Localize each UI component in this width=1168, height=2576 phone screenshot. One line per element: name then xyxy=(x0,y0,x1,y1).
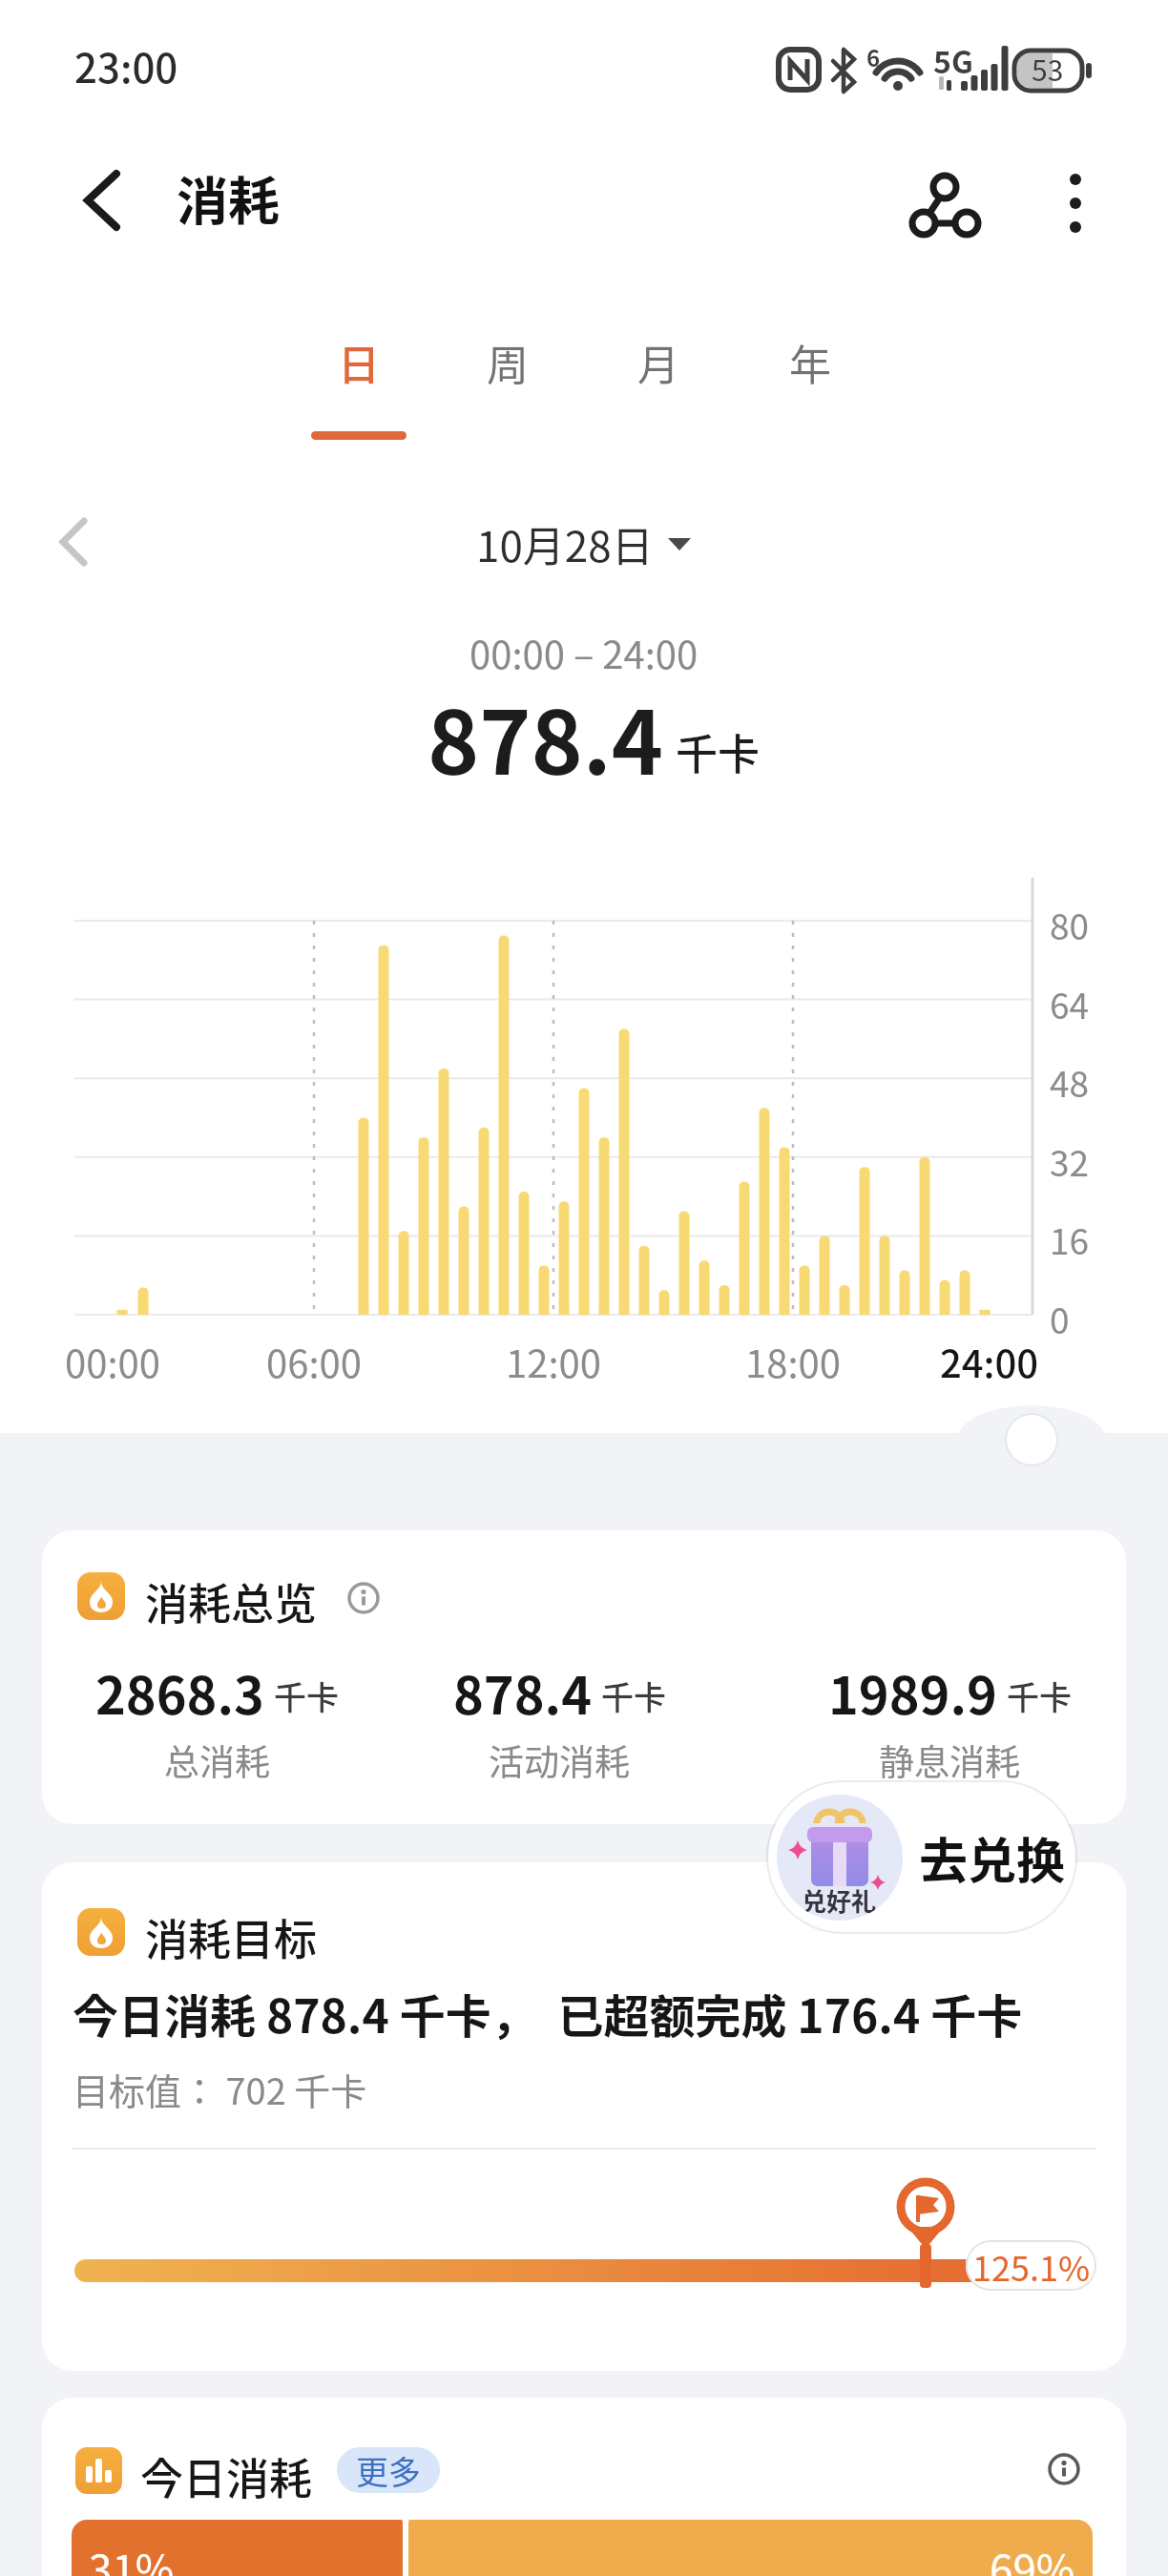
staticText: 千卡 xyxy=(274,1672,339,1719)
staticText: 1989.9 xyxy=(828,1654,997,1729)
staticText: 千卡 xyxy=(1007,1672,1072,1719)
button[interactable] xyxy=(1047,2452,1085,2490)
staticText: 月 xyxy=(637,332,679,393)
staticText: 10月28日 xyxy=(476,513,654,574)
staticText: 80 xyxy=(1050,899,1090,950)
staticText: 878.4 xyxy=(453,1654,592,1729)
staticText: 千卡 xyxy=(601,1672,666,1719)
staticText: 今日消耗 878.4 千卡， 已超额完成 176.4 千卡 xyxy=(73,1980,1023,2046)
staticText: 总消耗 xyxy=(164,1735,270,1786)
button[interactable]: 今日消耗 xyxy=(42,2398,1126,2576)
staticText: 18:00 xyxy=(745,1334,841,1389)
staticText: 消耗目标 xyxy=(145,1906,318,1968)
staticText: 日 xyxy=(338,332,380,393)
staticText: 31% xyxy=(89,2537,175,2576)
staticText: 12:00 xyxy=(506,1334,601,1389)
staticText: 32 xyxy=(1050,1135,1090,1187)
staticText: 消耗 xyxy=(177,160,280,235)
button[interactable]: 月 xyxy=(611,324,706,439)
staticText: 今日消耗 xyxy=(140,2445,313,2507)
button[interactable] xyxy=(67,162,143,239)
button[interactable] xyxy=(897,160,992,246)
staticText: 48 xyxy=(1050,1056,1090,1108)
button[interactable]: 消耗总览 xyxy=(42,1530,1126,1824)
staticText: 千卡 xyxy=(676,721,760,782)
staticText: 周 xyxy=(487,332,529,393)
button[interactable]: 消耗目标 xyxy=(42,1862,1126,2371)
staticText: 878.4 xyxy=(428,673,664,800)
staticText: 目标值： 702 千卡 xyxy=(73,2063,367,2115)
button[interactable]: 年 xyxy=(762,324,858,439)
staticText: 23:00 xyxy=(74,36,178,94)
button[interactable]: 兑好礼 xyxy=(768,1782,1075,1932)
button[interactable]: 周 xyxy=(460,324,555,439)
staticText: 64 xyxy=(1050,978,1090,1029)
button[interactable]: 更多 xyxy=(337,2447,440,2493)
button[interactable] xyxy=(44,504,105,580)
staticText: 静息消耗 xyxy=(879,1735,1020,1786)
staticText: 5G xyxy=(933,38,973,82)
staticText: 兑好礼 xyxy=(802,1882,877,1919)
button[interactable]: 日 xyxy=(311,324,407,439)
staticText: 125.1% xyxy=(972,2241,1091,2291)
staticText: 消耗总览 xyxy=(145,1570,318,1632)
staticText: 更多 xyxy=(356,2447,421,2493)
staticText: 00:00 – 24:00 xyxy=(469,625,699,680)
staticText: 0 xyxy=(1050,1293,1070,1344)
button[interactable]: 10月28日 xyxy=(476,513,692,574)
button[interactable] xyxy=(346,1581,385,1619)
staticText: 06:00 xyxy=(266,1334,362,1389)
staticText: 年 xyxy=(789,332,831,393)
staticText: 2868.3 xyxy=(95,1654,264,1729)
staticText: 去兑换 xyxy=(919,1822,1066,1893)
button[interactable] xyxy=(1048,160,1105,246)
staticText: 24:00 xyxy=(940,1334,1039,1389)
staticText: 53 xyxy=(1032,48,1064,89)
staticText: 6 xyxy=(866,40,881,73)
staticText: 69% xyxy=(990,2537,1075,2576)
staticText: 16 xyxy=(1050,1214,1090,1265)
staticText: 00:00 xyxy=(65,1334,160,1389)
staticText: 活动消耗 xyxy=(489,1735,630,1786)
